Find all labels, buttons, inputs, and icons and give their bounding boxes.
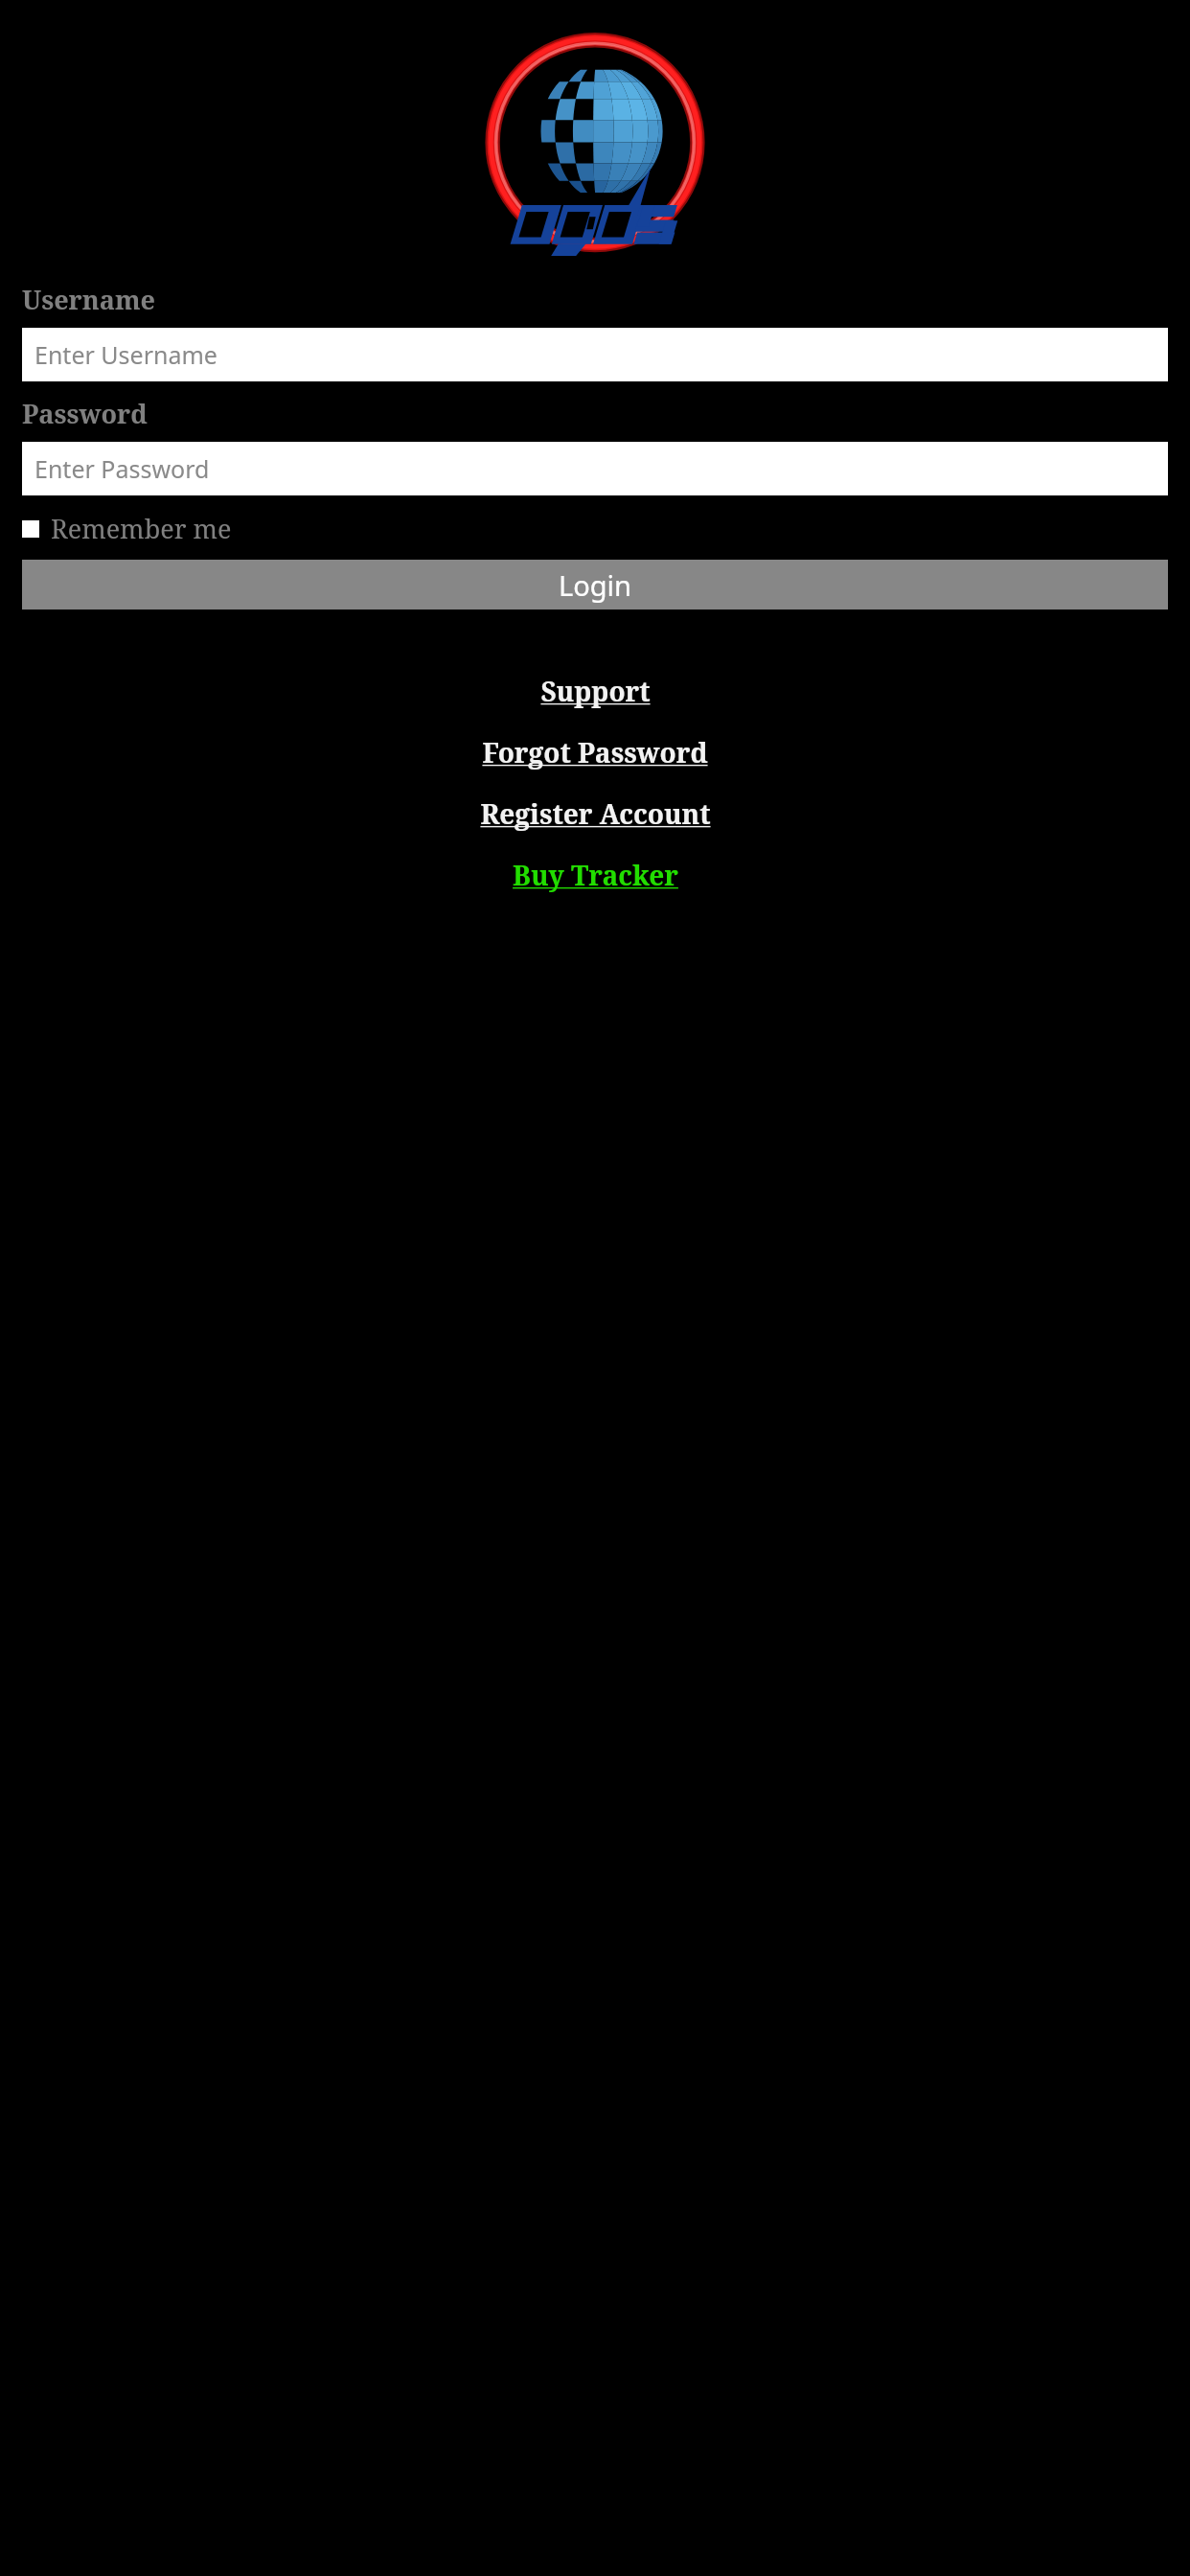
- button[interactable]: Enter Password: [22, 442, 1168, 495]
- staticText: Forgot Password: [482, 734, 708, 770]
- staticText: Register Account: [480, 795, 711, 832]
- button[interactable]: Buy Tracker: [0, 857, 1190, 893]
- staticText: Buy Tracker: [513, 857, 678, 893]
- button[interactable]: Remember me: [22, 509, 232, 548]
- button[interactable]: Forgot Password: [0, 734, 1190, 770]
- button[interactable]: Login: [22, 560, 1168, 609]
- other: OGBS logo: [465, 13, 725, 274]
- staticText: Remember me: [51, 511, 232, 546]
- button[interactable]: Enter Username: [22, 328, 1168, 381]
- staticText: Enter Password: [34, 452, 210, 485]
- staticText: Support: [540, 673, 651, 709]
- button[interactable]: Support: [0, 673, 1190, 709]
- button[interactable]: Register Account: [0, 795, 1190, 832]
- staticText: Password: [22, 396, 148, 431]
- staticText: Login: [559, 566, 631, 604]
- staticText: Enter Username: [34, 338, 217, 371]
- staticText: Username: [22, 282, 155, 317]
